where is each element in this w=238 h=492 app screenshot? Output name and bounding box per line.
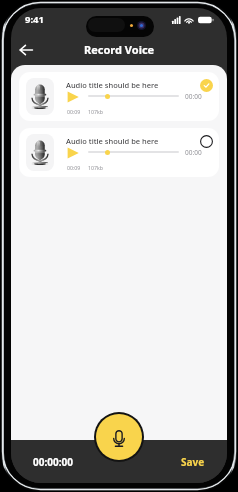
staticText: 00:00 bbox=[185, 148, 202, 157]
button[interactable]: Audio title should be here bbox=[19, 128, 219, 177]
staticText: 107kb bbox=[88, 108, 103, 115]
button[interactable]: Play bbox=[67, 147, 79, 159]
staticText: 00:09 bbox=[67, 164, 81, 171]
button[interactable]: Select recording bbox=[200, 79, 213, 92]
button[interactable]: Audio title should be here bbox=[19, 72, 219, 121]
staticText: 00:00:00 bbox=[33, 455, 73, 469]
staticText: 107kb bbox=[88, 164, 103, 171]
button[interactable]: Save bbox=[181, 455, 205, 469]
staticText: Audio title should be here bbox=[66, 136, 159, 146]
button[interactable]: Record bbox=[96, 414, 142, 460]
staticText: 00:09 bbox=[67, 108, 81, 115]
button[interactable]: Select recording bbox=[200, 135, 213, 148]
staticText: Record Voice bbox=[84, 42, 155, 57]
staticText: 9:41 bbox=[25, 13, 44, 26]
button[interactable]: Back bbox=[14, 38, 38, 62]
staticText: 00:00 bbox=[185, 92, 202, 101]
staticText: Audio title should be here bbox=[66, 80, 159, 90]
staticText: Save bbox=[181, 455, 205, 469]
button[interactable]: Play bbox=[67, 91, 79, 103]
